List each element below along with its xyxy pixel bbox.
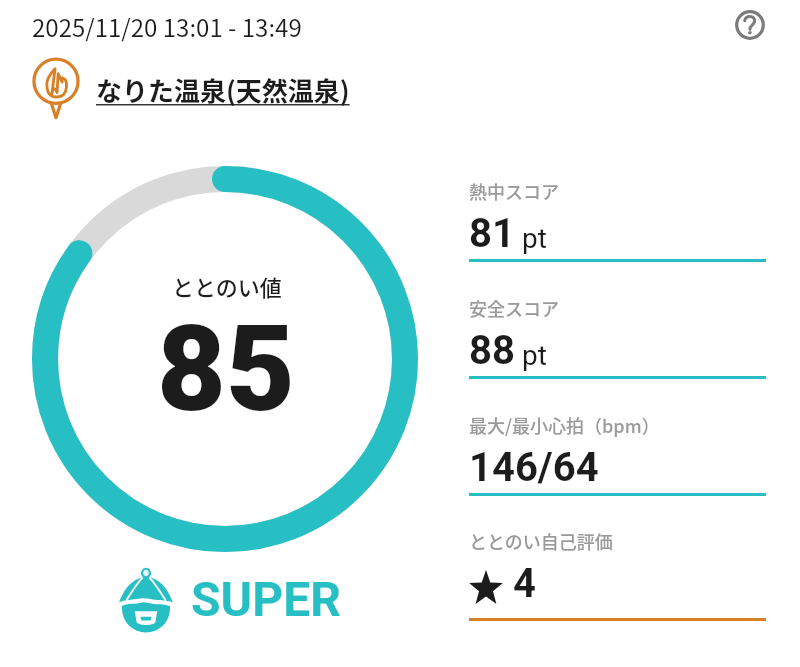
staticText: 最大/最小心拍（bpm）: [469, 412, 660, 438]
button[interactable]: 最大/最小心拍（bpm）: [469, 412, 766, 497]
staticText: 146/64: [469, 444, 599, 491]
button[interactable]: SUPER: [117, 564, 341, 630]
staticText: 4: [513, 560, 536, 607]
button[interactable]: 安全スコア: [469, 295, 766, 380]
button[interactable]: ととのい自己評価: [469, 528, 766, 622]
staticText: 85: [157, 300, 295, 439]
staticText: なりた温泉(天然温泉): [96, 71, 350, 109]
staticText: 熱中スコア: [469, 178, 559, 204]
button[interactable]: Help: [729, 4, 771, 46]
staticText: 安全スコア: [469, 295, 559, 321]
staticText: 2025/11/20 13:01 - 13:49: [32, 9, 302, 44]
staticText: pt: [522, 222, 547, 255]
staticText: SUPER: [191, 571, 341, 627]
staticText: 81: [469, 210, 515, 257]
staticText: 88: [469, 327, 515, 374]
button[interactable]: 熱中スコア: [469, 178, 766, 263]
staticText: pt: [522, 339, 547, 372]
staticText: ととのい自己評価: [469, 528, 613, 554]
button[interactable]: なりた温泉(天然温泉): [30, 56, 350, 118]
staticText: ととのい値: [172, 270, 282, 302]
